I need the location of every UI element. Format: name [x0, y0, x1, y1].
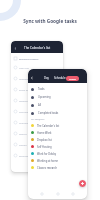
button[interactable]: Self Hosting — [31, 143, 87, 150]
staticText: Schedule — [54, 76, 66, 80]
staticText: Standup — [19, 121, 29, 124]
staticText: Tasks — [38, 87, 45, 91]
staticText: The Calendar's list — [24, 46, 51, 50]
button[interactable]: Add task — [79, 180, 86, 187]
staticText: Backlog — [19, 154, 28, 157]
button[interactable]: Working at home — [31, 157, 87, 164]
button[interactable]: The Calendar's list — [31, 122, 87, 129]
staticText: Design — [19, 143, 27, 146]
staticText: Work for Debby — [37, 152, 57, 156]
staticText: Meeting — [19, 77, 29, 80]
staticText: Completed tasks — [38, 111, 59, 115]
button[interactable]: Nav 0 — [40, 192, 44, 196]
staticText: Sync with Google tasks — [0, 18, 100, 24]
button[interactable]: Day — [44, 76, 49, 80]
button[interactable]: Work for Debby — [31, 150, 87, 157]
button[interactable]: Dropbox list — [31, 136, 87, 143]
button[interactable]: Classes research — [31, 164, 87, 171]
staticText: Email team — [19, 88, 32, 91]
button[interactable]: Completed tasks — [31, 109, 87, 117]
staticText: MY PROJECTS — [31, 118, 45, 121]
button[interactable]: Tasks — [31, 85, 87, 93]
staticText: The Calendar's list — [37, 124, 60, 128]
staticText: Report — [19, 132, 27, 135]
staticText: Self Hosting — [37, 145, 52, 149]
staticText: All — [38, 103, 41, 107]
staticText: Task one — [19, 66, 29, 69]
staticText: Home Work — [37, 131, 52, 135]
staticText: Day — [44, 76, 49, 80]
button[interactable]: Schedule — [54, 76, 66, 80]
staticText: Working at home — [37, 159, 59, 163]
button[interactable]: Today — [66, 76, 79, 81]
button[interactable]: Upcoming — [31, 93, 87, 101]
button[interactable]: All — [31, 101, 87, 109]
staticText: Classes research — [37, 166, 58, 170]
staticText: Review PR — [19, 99, 31, 102]
button[interactable]: Back — [30, 76, 34, 80]
button[interactable]: Home Work — [31, 129, 87, 136]
staticText: Planning — [19, 110, 29, 113]
staticText: Business projects — [19, 57, 39, 60]
staticText: Upcoming — [38, 95, 51, 99]
staticText: Today — [69, 77, 76, 80]
staticText: Dropbox list — [37, 138, 52, 142]
button[interactable]: Nav 2 — [71, 192, 75, 196]
button[interactable]: Nav 1 — [56, 192, 60, 196]
